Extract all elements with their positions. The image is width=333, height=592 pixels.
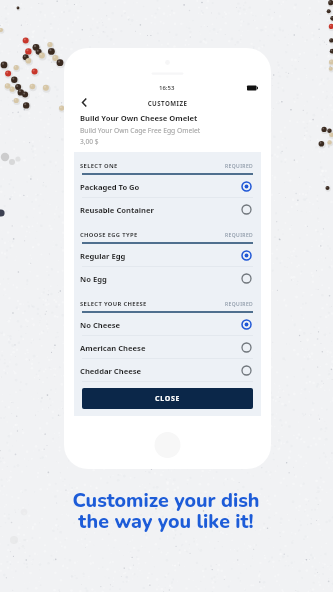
button[interactable]: No Cheese [74,313,261,336]
button[interactable]: American Cheese [74,336,261,359]
staticText: Packaged To Go [80,182,140,192]
staticText: Build Your Own Cheese Omelet [80,113,198,123]
staticText: SELECT ONE [80,162,118,170]
button[interactable]: Regular Egg [74,244,261,267]
staticText: Customize your dish [72,487,260,514]
button[interactable]: Cheddar Cheese [74,359,261,382]
staticText: REQUIRED [225,301,254,308]
staticText: American Cheese [80,343,146,353]
button[interactable]: Reusable Container [74,198,261,221]
staticText: No Egg [80,274,107,284]
staticText: No Cheese [80,320,121,330]
staticText: SELECT YOUR CHEESE [80,300,147,308]
button[interactable]: Back [75,93,93,111]
staticText: Regular Egg [80,251,126,261]
staticText: the way you like it! [78,508,254,535]
staticText: CHOOSE EGG TYPE [80,231,138,239]
staticText: Cheddar Cheese [80,366,142,376]
staticText: Reusable Container [80,205,154,215]
staticText: REQUIRED [225,163,254,170]
button[interactable]: CLOSE [82,388,253,409]
staticText: CLOSE [155,394,181,404]
staticText: Build Your Own Cage Free Egg Omelet [80,126,201,135]
button[interactable]: No Egg [74,267,261,290]
button[interactable]: Packaged To Go [74,175,261,198]
staticText: CUSTOMIZE [74,99,261,107]
staticText: 3,00 $ [80,137,99,146]
staticText: 16:53 [159,84,175,92]
staticText: REQUIRED [225,232,254,239]
